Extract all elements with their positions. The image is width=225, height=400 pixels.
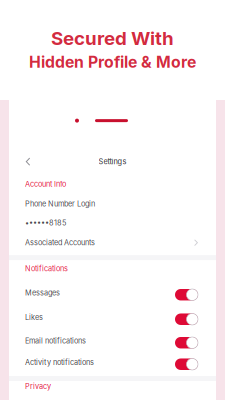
button[interactable]: Phone Number Login: [9, 199, 216, 227]
staticText: Email notifications: [25, 336, 86, 345]
staticText: ••••••8185: [25, 218, 66, 227]
staticText: Activity notifications: [25, 358, 94, 367]
staticText: Phone Number Login: [25, 199, 95, 208]
staticText: Associated Accounts: [25, 238, 95, 247]
staticText: Secured With: [51, 27, 174, 50]
staticText: Privacy: [25, 382, 51, 391]
button[interactable]: Activity notifications: [9, 356, 216, 368]
staticText: Messages: [25, 288, 60, 297]
button[interactable]: Email notifications: [9, 335, 216, 346]
button[interactable]: Messages: [9, 287, 216, 298]
button[interactable]: Back: [21, 155, 35, 169]
staticText: Hidden Profile & More: [29, 53, 196, 72]
staticText: Notifications: [25, 264, 68, 273]
staticText: Likes: [25, 313, 43, 322]
button[interactable]: Associated Accounts: [9, 238, 216, 247]
staticText: Settings: [98, 157, 126, 166]
button[interactable]: Likes: [9, 311, 216, 323]
staticText: Account Info: [25, 180, 66, 188]
